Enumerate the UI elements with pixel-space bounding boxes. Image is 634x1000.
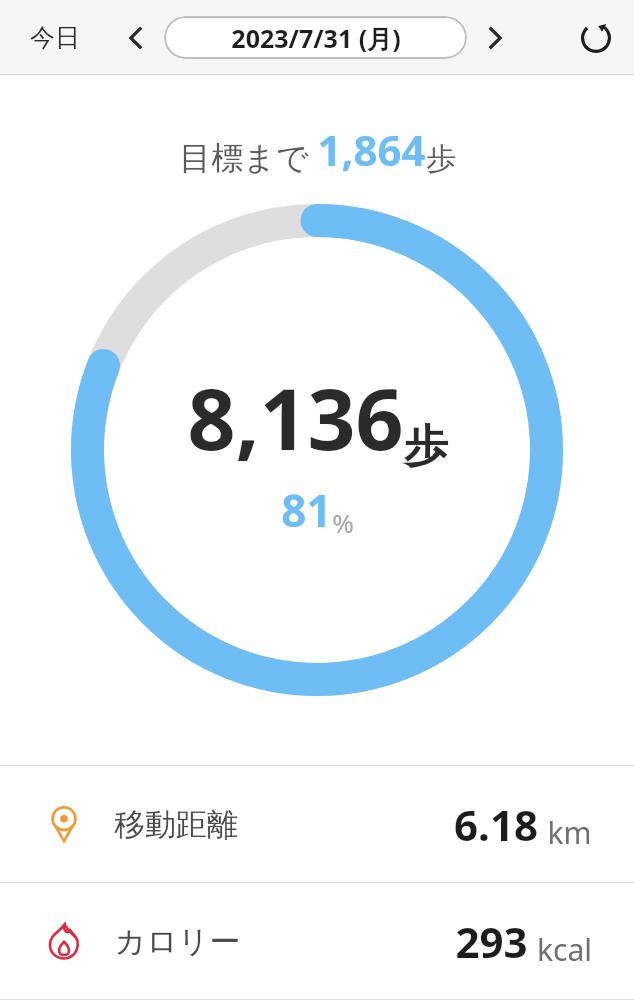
staticText: 今日	[30, 22, 80, 53]
button[interactable]: Distance	[0, 766, 634, 882]
other: Distance	[44, 804, 84, 844]
staticText: 移動距離	[114, 805, 238, 844]
staticText: 1,864	[317, 121, 426, 178]
staticText: 6.18	[454, 796, 538, 853]
staticText: kcal	[537, 929, 592, 970]
button[interactable]: Refresh	[570, 12, 622, 64]
staticText: %	[332, 505, 354, 540]
staticText: 目標まで	[179, 138, 309, 178]
staticText: 歩	[404, 419, 448, 474]
staticText: カロリー	[114, 922, 241, 961]
staticText: 8,136	[187, 360, 404, 474]
staticText: 81	[281, 480, 332, 540]
other: Calories	[44, 921, 84, 961]
staticText: 歩	[426, 140, 456, 178]
button[interactable]: 2023/7/31 (月)	[164, 16, 467, 59]
staticText: km	[547, 812, 592, 853]
button[interactable]: Calories	[0, 883, 634, 999]
button[interactable]: Next day	[473, 16, 517, 60]
button[interactable]: 今日	[26, 16, 84, 59]
button[interactable]: Previous day	[114, 16, 158, 60]
staticText: 293	[455, 913, 528, 970]
staticText: 2023/7/31 (月)	[231, 21, 401, 55]
